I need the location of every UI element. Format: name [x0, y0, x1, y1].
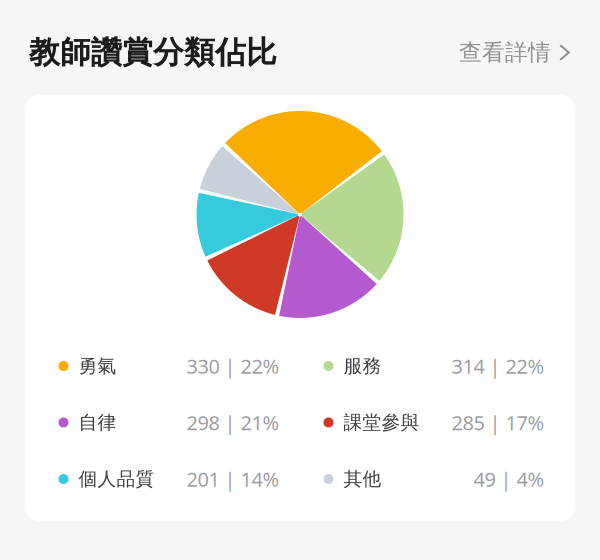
staticText: 個人品質 [78, 467, 154, 490]
staticText: 314 | 22% [451, 353, 544, 379]
staticText: 298 | 21% [186, 409, 279, 436]
staticText: 285 | 17% [451, 409, 544, 436]
staticText: 勇氣 [78, 354, 116, 377]
staticText: 查看詳情 [459, 39, 551, 66]
staticText: 其他 [343, 467, 381, 490]
staticText: 330 | 22% [186, 353, 279, 379]
button[interactable]: 服務 [323, 349, 544, 383]
button[interactable]: 勇氣 [58, 349, 279, 383]
staticText: 服務 [343, 354, 381, 377]
staticText: 49 | 4% [473, 466, 544, 492]
staticText: 教師讚賞分類佔比 [29, 34, 277, 71]
staticText: 201 | 14% [186, 466, 279, 492]
button[interactable]: 查看詳情 [459, 31, 570, 74]
button[interactable]: 個人品質 [58, 462, 279, 496]
button[interactable]: 自律 [58, 405, 279, 439]
staticText: 課堂參與 [343, 411, 419, 434]
button[interactable]: 課堂參與 [323, 405, 544, 439]
button[interactable]: 其他 [323, 462, 544, 496]
staticText: 自律 [78, 411, 116, 434]
